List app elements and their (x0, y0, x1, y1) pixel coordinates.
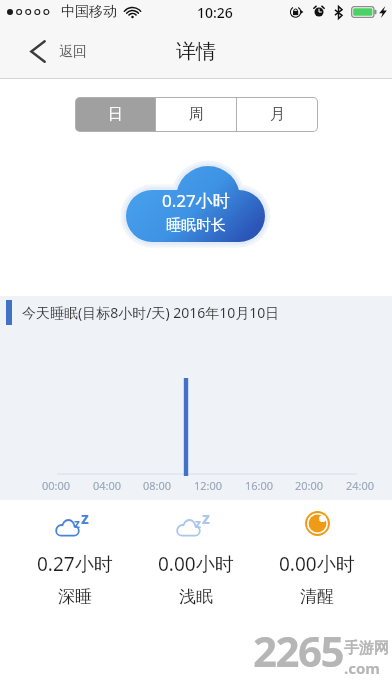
staticText: 返回 (59, 43, 87, 61)
button[interactable]: 周 (156, 98, 236, 131)
staticText: 2265 (253, 622, 344, 679)
staticText: 12:00 (194, 478, 223, 493)
staticText: 0.00小时 (279, 551, 355, 577)
staticText: 今天睡眠(目标8小时/天) 2016年10月10日 (22, 303, 280, 322)
button[interactable]: 0.00小时 (271, 508, 363, 607)
staticText: 0.27小时 (162, 189, 230, 212)
staticText: 日 (108, 105, 123, 124)
staticText: 16:00 (245, 478, 274, 493)
staticText: 中国移动 (61, 3, 117, 21)
button[interactable]: z (150, 508, 242, 607)
staticText: 浅眠 (179, 586, 213, 607)
button[interactable]: 日 (76, 98, 155, 131)
staticText: 深睡 (58, 586, 92, 607)
staticText: 清醒 (300, 586, 334, 607)
staticText: 04:00 (93, 478, 122, 493)
staticText: .com (344, 658, 380, 678)
staticText: 睡眠时长 (166, 216, 226, 235)
staticText: 详情 (176, 39, 216, 64)
staticText: 0.27小时 (37, 551, 113, 577)
staticText: 10:26 (197, 3, 233, 22)
button[interactable]: z (29, 508, 121, 607)
staticText: z (202, 507, 210, 529)
staticText: 0.00小时 (158, 551, 234, 577)
staticText: 周 (189, 105, 204, 124)
staticText: z (195, 515, 201, 531)
staticText: 20:00 (295, 478, 324, 493)
button[interactable]: 月 (237, 98, 317, 131)
staticText: 08:00 (143, 478, 172, 493)
button[interactable]: 返回 (0, 30, 101, 73)
staticText: z (81, 507, 89, 529)
staticText: 手游网 (344, 639, 389, 658)
staticText: 月 (270, 105, 285, 124)
staticText: 24:00 (346, 478, 375, 493)
staticText: 00:00 (42, 478, 71, 493)
staticText: z (74, 515, 80, 531)
